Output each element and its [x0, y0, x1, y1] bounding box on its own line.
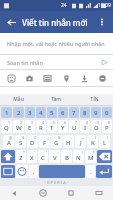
button[interactable]: ;	[61, 150, 72, 163]
button[interactable]: Soạn tin nhắn	[0, 55, 113, 69]
staticText: -	[71, 135, 73, 140]
staticText: L	[103, 139, 107, 147]
button[interactable]: Send	[97, 55, 111, 69]
button[interactable]: Keyboard options	[85, 186, 113, 200]
button[interactable]: Nhập một, vài hoặc nhiều người nhận	[0, 33, 113, 54]
staticText: N	[76, 154, 81, 162]
button[interactable]: 6	[58, 120, 68, 133]
button[interactable]: Mẫu	[0, 94, 37, 105]
button[interactable]: 4	[36, 120, 46, 133]
button[interactable]: 1	[1, 120, 12, 133]
staticText: 5	[50, 109, 54, 117]
button[interactable]: 0	[102, 120, 112, 133]
staticText: 1	[8, 120, 11, 125]
staticText: &	[58, 135, 61, 140]
staticText: _	[47, 135, 49, 140]
button[interactable]: 9	[91, 107, 101, 118]
staticText: 5	[53, 120, 56, 125]
staticText: 9	[94, 109, 98, 117]
staticText: 2	[20, 120, 23, 125]
staticText: 9	[97, 120, 100, 125]
staticText: )	[107, 135, 109, 140]
staticText: ,	[33, 168, 35, 176]
staticText: R	[39, 124, 43, 132]
button[interactable]: ?	[85, 150, 96, 163]
button[interactable]: Enter	[96, 165, 112, 178]
button[interactable]: !	[73, 150, 84, 163]
button[interactable]: Gallery	[40, 71, 54, 85]
staticText: G	[54, 139, 59, 147]
button[interactable]: 3	[25, 120, 35, 133]
button[interactable]: 7	[69, 120, 79, 133]
staticText: 0	[108, 120, 111, 125]
button[interactable]: Camera	[22, 71, 36, 85]
button[interactable]: 4	[36, 107, 46, 118]
button[interactable]: 6	[58, 107, 68, 118]
staticText: TÍN	[90, 96, 99, 103]
staticText: · X P E R I A ·	[45, 180, 68, 185]
button[interactable]: '	[38, 150, 48, 163]
staticText: K	[91, 139, 95, 147]
button[interactable]: 0	[102, 107, 112, 118]
button[interactable]: Attach file	[77, 71, 91, 85]
staticText: ?	[93, 150, 95, 155]
staticText: 0	[105, 109, 109, 117]
button[interactable]: +	[75, 135, 86, 148]
button[interactable]: 5	[47, 120, 57, 133]
button[interactable]: Home	[29, 186, 57, 200]
button[interactable]: Sticker	[4, 71, 18, 85]
button[interactable]: 3	[25, 107, 35, 118]
staticText: @	[9, 135, 13, 140]
staticText: *	[23, 150, 25, 155]
staticText: 6	[64, 120, 67, 125]
button[interactable]: Backspace	[97, 150, 112, 163]
staticText: J	[80, 139, 82, 147]
button[interactable]: -	[63, 135, 74, 148]
button[interactable]: &	[51, 135, 62, 148]
button[interactable]: 2	[13, 107, 24, 118]
button[interactable]: 8	[80, 107, 90, 118]
button[interactable]: Shift	[1, 150, 15, 163]
staticText: Nhập một, vài hoặc nhiều người nhận	[7, 40, 105, 47]
button[interactable]: Space	[39, 165, 85, 178]
staticText: Z	[19, 154, 23, 162]
staticText: +	[82, 135, 85, 140]
button[interactable]: Emoji	[16, 165, 28, 178]
staticText: 3	[31, 120, 34, 125]
button[interactable]: "	[27, 150, 37, 163]
staticText: 1	[5, 109, 9, 117]
button[interactable]: _	[39, 135, 50, 148]
button[interactable]: Back	[0, 186, 29, 200]
staticText: $	[34, 135, 37, 140]
button[interactable]: 1	[1, 107, 12, 118]
button[interactable]: 2	[13, 120, 24, 133]
staticText: Mẫu	[13, 96, 24, 103]
button[interactable]: More	[95, 71, 109, 85]
button[interactable]: *	[16, 150, 26, 163]
button[interactable]: Back	[0, 11, 22, 33]
staticText: E	[28, 124, 32, 132]
button[interactable]: .	[86, 165, 95, 178]
button[interactable]: 9	[91, 120, 101, 133]
button[interactable]: 5	[47, 107, 57, 118]
button[interactable]: 8	[80, 120, 90, 133]
button[interactable]: ,	[29, 165, 38, 178]
button[interactable]: Recents	[57, 186, 85, 200]
staticText: "	[34, 150, 36, 155]
button[interactable]: More options	[91, 11, 113, 33]
staticText: U	[72, 124, 77, 132]
button[interactable]: $	[27, 135, 38, 148]
button[interactable]: TÍN	[75, 94, 113, 105]
button[interactable]: 7	[69, 107, 79, 118]
staticText: 6	[61, 109, 65, 117]
button[interactable]: Numbers	[1, 165, 15, 178]
staticText: 12:09	[98, 2, 111, 9]
button[interactable]: @	[3, 135, 14, 148]
button[interactable]: Tâm	[37, 94, 75, 105]
button[interactable]: Location	[59, 71, 73, 85]
staticText: ;	[70, 150, 71, 155]
button[interactable]: )	[99, 135, 110, 148]
button[interactable]: (	[87, 135, 98, 148]
button[interactable]: :	[49, 150, 60, 163]
button[interactable]: #	[15, 135, 26, 148]
